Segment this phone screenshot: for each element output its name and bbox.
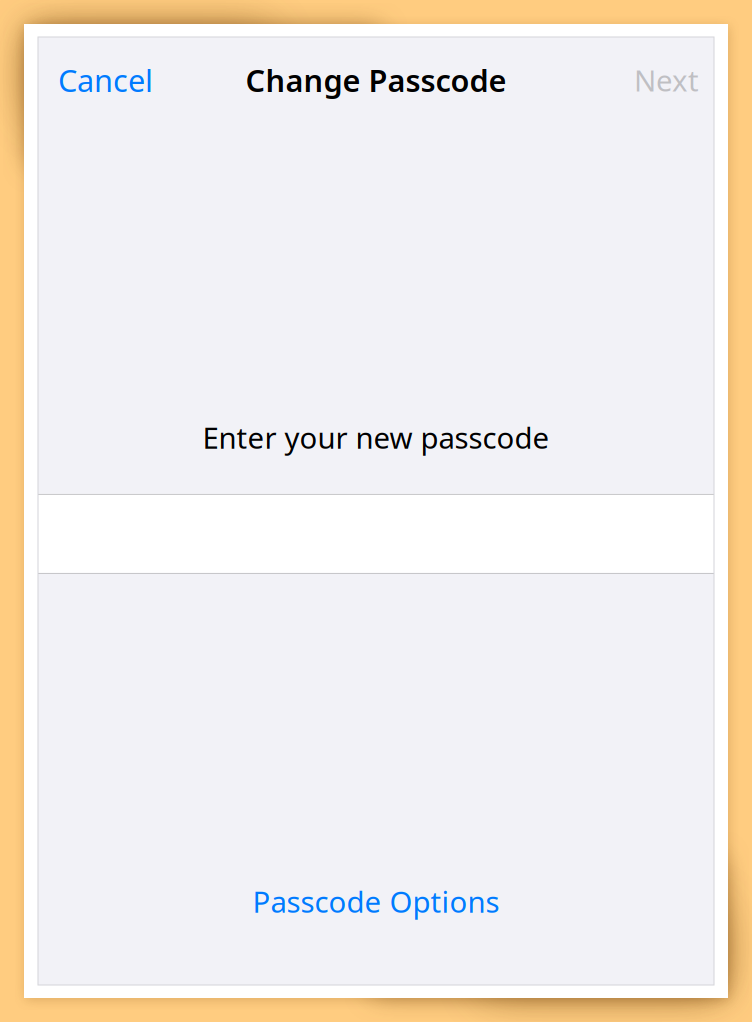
staticText: Next [634, 60, 699, 99]
button[interactable]: Passcode Options [230, 871, 521, 932]
staticText: Passcode Options [252, 882, 499, 921]
button[interactable]: Next [620, 46, 699, 113]
button[interactable]: New passcode [38, 494, 714, 574]
staticText: Cancel [58, 60, 153, 100]
staticText: Enter your new passcode [202, 418, 549, 457]
staticText: Change Passcode [245, 60, 506, 100]
button[interactable]: Cancel [58, 46, 167, 114]
